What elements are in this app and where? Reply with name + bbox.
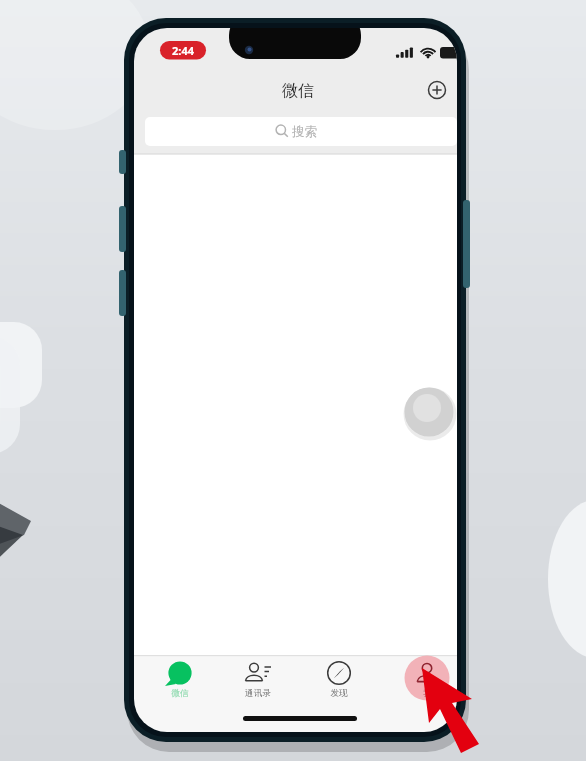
button[interactable]: AssistiveTouch [404,387,454,437]
staticText: 通讯录 [245,688,271,699]
button[interactable] [303,656,375,706]
button[interactable] [222,656,294,706]
staticText: 我 [423,688,432,699]
staticText: 发现 [330,688,348,699]
button[interactable]: Add [421,74,453,106]
staticText: 微信 [171,688,189,699]
staticText: 搜索 [292,124,317,140]
button[interactable] [391,656,463,706]
button[interactable]: Search [145,117,457,146]
staticText: 2:44 [172,43,194,58]
staticText: 微信 [282,81,314,101]
button[interactable] [144,656,216,706]
